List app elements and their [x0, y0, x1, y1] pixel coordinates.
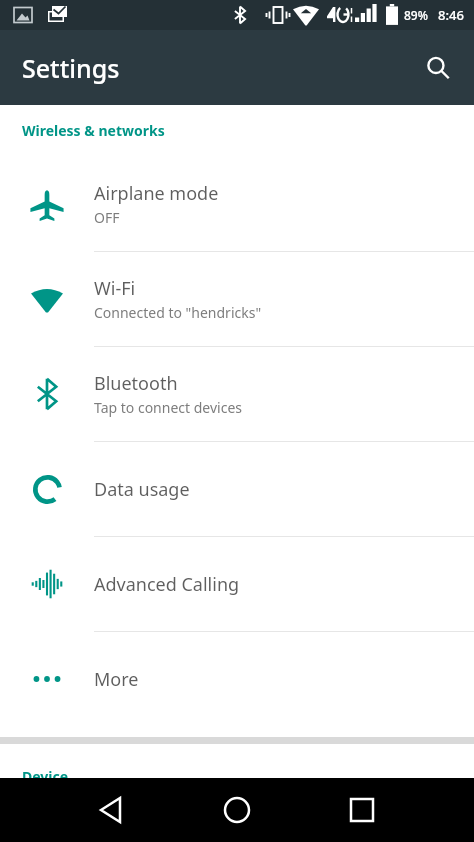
button[interactable]: Bluetooth: [0, 347, 474, 441]
button[interactable]: Advanced Calling: [0, 537, 474, 631]
staticText: Wireless & networks: [22, 121, 165, 140]
staticText: Device: [22, 767, 69, 778]
staticText: Data usage: [94, 477, 190, 502]
button[interactable]: Airplane mode: [0, 157, 474, 251]
staticText: Bluetooth: [94, 371, 178, 396]
button[interactable]: Recent apps: [338, 786, 386, 834]
staticText: 89%: [404, 7, 428, 23]
button[interactable]: Wi-Fi: [0, 252, 474, 346]
staticText: Wi-Fi: [94, 276, 136, 301]
staticText: 8:46: [438, 6, 464, 24]
button[interactable]: Data usage: [0, 442, 474, 536]
staticText: Airplane mode: [94, 181, 219, 206]
staticText: More: [94, 667, 139, 692]
button[interactable]: More: [0, 632, 474, 726]
button[interactable]: Search: [414, 44, 462, 92]
button[interactable]: Back: [88, 786, 136, 834]
staticText: Tap to connect devices: [94, 398, 243, 417]
staticText: Connected to "hendricks": [94, 303, 262, 322]
staticText: Advanced Calling: [94, 572, 240, 597]
staticText: Settings: [22, 51, 120, 85]
button[interactable]: Home: [213, 786, 261, 834]
staticText: OFF: [94, 208, 120, 227]
